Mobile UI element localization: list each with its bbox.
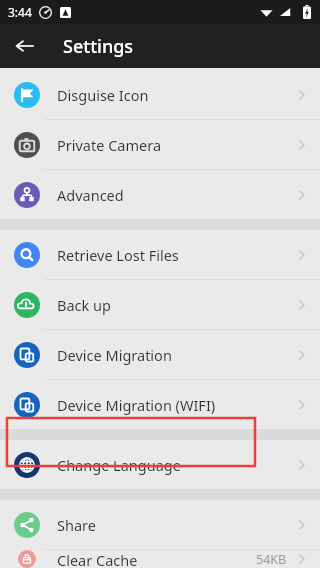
staticText: 54KB bbox=[256, 551, 287, 568]
button[interactable]: Share bbox=[0, 500, 320, 549]
button[interactable]: Change Language bbox=[0, 440, 320, 489]
staticText: Disguise Icon bbox=[57, 85, 149, 105]
button[interactable]: Advanced bbox=[0, 170, 320, 219]
staticText: Advanced bbox=[57, 185, 124, 205]
staticText: Clear Cache bbox=[57, 550, 138, 568]
button[interactable]: Device Migration bbox=[0, 330, 320, 379]
staticText: 3:44 bbox=[8, 4, 32, 20]
staticText: Back up bbox=[57, 295, 111, 315]
button[interactable]: Back up bbox=[0, 280, 320, 329]
button[interactable]: Private Camera bbox=[0, 120, 320, 169]
staticText: Settings bbox=[63, 34, 134, 59]
staticText: Share bbox=[57, 515, 96, 535]
button[interactable]: Back bbox=[9, 30, 41, 62]
staticText: Device Migration (WIFI) bbox=[57, 395, 216, 415]
button[interactable]: Clear Cache bbox=[0, 550, 320, 568]
button[interactable]: Retrieve Lost Files bbox=[0, 230, 320, 279]
staticText: Device Migration bbox=[57, 345, 172, 365]
staticText: Change Language bbox=[57, 455, 181, 475]
button[interactable]: Device Migration (WIFI) bbox=[0, 380, 320, 429]
button[interactable]: Disguise Icon bbox=[0, 70, 320, 119]
staticText: Retrieve Lost Files bbox=[57, 245, 179, 265]
staticText: Private Camera bbox=[57, 135, 162, 155]
